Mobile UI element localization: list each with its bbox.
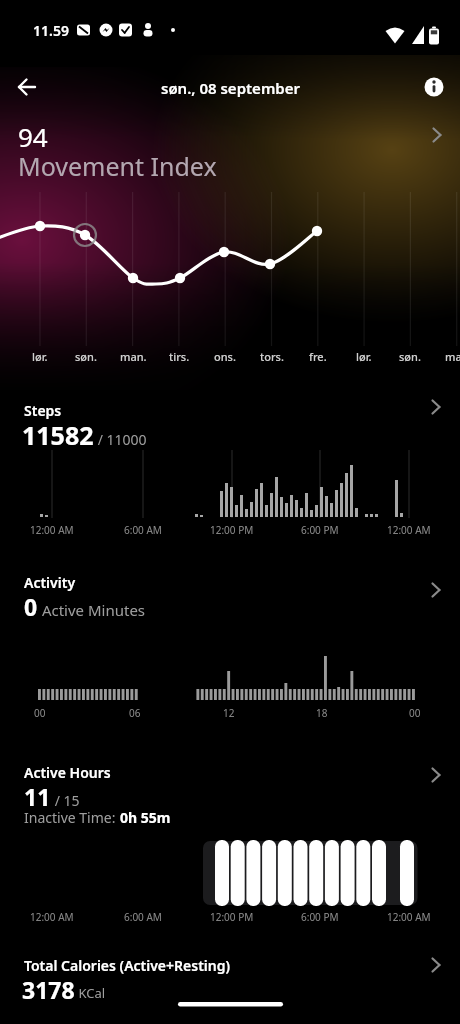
- button[interactable]: [0, 946, 460, 1001]
- staticText: 12:00 PM: [210, 523, 254, 537]
- staticText: 12:00 AM: [387, 523, 431, 537]
- staticText: 6:00 PM: [301, 910, 339, 924]
- staticText: 0h 55m: [120, 808, 171, 827]
- staticText: 12:00 PM: [210, 910, 254, 924]
- button[interactable]: [414, 67, 454, 107]
- staticText: 18: [316, 706, 328, 720]
- staticText: 06: [129, 706, 141, 720]
- button[interactable]: [0, 110, 460, 185]
- staticText: fre.: [309, 349, 327, 364]
- staticText: 3178: [22, 974, 75, 1005]
- staticText: 6:00 AM: [124, 910, 162, 924]
- staticText: Steps: [24, 401, 62, 420]
- staticText: lør.: [356, 349, 372, 364]
- staticText: lør.: [32, 349, 48, 364]
- staticText: Total Calories (Active+Resting): [24, 956, 231, 975]
- staticText: ons.: [214, 349, 236, 364]
- staticText: 12: [223, 706, 235, 720]
- staticText: 6:00 AM: [124, 523, 162, 537]
- staticText: man.: [120, 349, 147, 364]
- staticText: tirs.: [169, 349, 190, 364]
- staticText: 94: [18, 119, 48, 154]
- staticText: Active Minutes: [38, 600, 146, 620]
- staticText: KCal: [75, 984, 106, 1002]
- staticText: Activity: [24, 573, 76, 592]
- staticText: søn., 08 september: [161, 78, 300, 98]
- staticText: man: [445, 349, 460, 364]
- staticText: søn.: [399, 349, 421, 364]
- button[interactable]: [0, 393, 460, 448]
- button[interactable]: [8, 67, 48, 107]
- staticText: 00: [34, 706, 46, 720]
- button[interactable]: [0, 753, 460, 828]
- staticText: 00: [409, 706, 421, 720]
- staticText: 12:00 AM: [387, 910, 431, 924]
- staticText: 11582: [22, 418, 94, 452]
- staticText: Movement Index: [18, 149, 217, 183]
- staticText: 0: [24, 591, 38, 622]
- staticText: Inactive Time:: [24, 808, 120, 827]
- staticText: / 15: [51, 791, 80, 810]
- staticText: 11.59: [33, 21, 69, 40]
- staticText: søn.: [75, 349, 97, 364]
- staticText: tors.: [260, 349, 284, 364]
- staticText: 11: [24, 781, 51, 812]
- staticText: / 11000: [94, 430, 147, 449]
- staticText: 12:00 AM: [30, 910, 74, 924]
- button[interactable]: [0, 563, 460, 618]
- staticText: 6:00 PM: [301, 523, 339, 537]
- staticText: 12:00 AM: [30, 523, 74, 537]
- staticText: Active Hours: [24, 763, 111, 782]
